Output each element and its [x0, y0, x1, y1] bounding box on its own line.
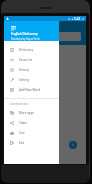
button[interactable]: Favourite: [4, 55, 59, 65]
button[interactable]: Share: [4, 118, 59, 128]
staticText: Dictionary: [19, 48, 34, 52]
staticText: Favourite: [19, 58, 33, 62]
button[interactable]: Exit: [4, 138, 59, 148]
button[interactable]: Download: [69, 141, 77, 149]
staticText: Develop by ExperTech: [11, 37, 40, 41]
button[interactable]: Like: [4, 128, 59, 138]
button[interactable]: History: [4, 65, 59, 75]
staticText: 5:22: [74, 17, 81, 21]
button[interactable]: Search: [8, 32, 81, 41]
staticText: History: [19, 68, 30, 72]
staticText: More apps: [19, 111, 34, 115]
staticText: Like: [19, 131, 25, 135]
staticText: English Dictionary: [11, 32, 38, 36]
staticText: Exit: [19, 141, 25, 145]
button[interactable]: More apps: [4, 108, 59, 118]
staticText: Communicate: [10, 102, 28, 106]
button[interactable]: Setting: [4, 75, 59, 85]
staticText: Setting: [19, 78, 29, 82]
button[interactable]: Dictionary: [4, 45, 59, 55]
staticText: Share: [19, 121, 28, 125]
button[interactable]: Add New Word: [4, 85, 59, 95]
staticText: Add New Word: [19, 88, 41, 92]
